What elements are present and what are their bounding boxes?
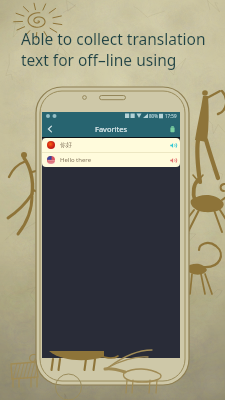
button[interactable]: Delete all [164, 121, 180, 137]
button[interactable]: Back [42, 121, 58, 137]
staticText: text for off–line using [21, 49, 177, 70]
staticText: Able to collect translation [21, 28, 206, 49]
button[interactable]: Hello there [42, 153, 180, 167]
button[interactable]: 你好 [42, 138, 180, 152]
staticText: 17:59 [165, 113, 177, 119]
staticText: 你好 [60, 141, 72, 149]
staticText: Hello there [60, 156, 92, 164]
staticText: Favorites [95, 124, 128, 134]
staticText: 80% [149, 113, 158, 119]
